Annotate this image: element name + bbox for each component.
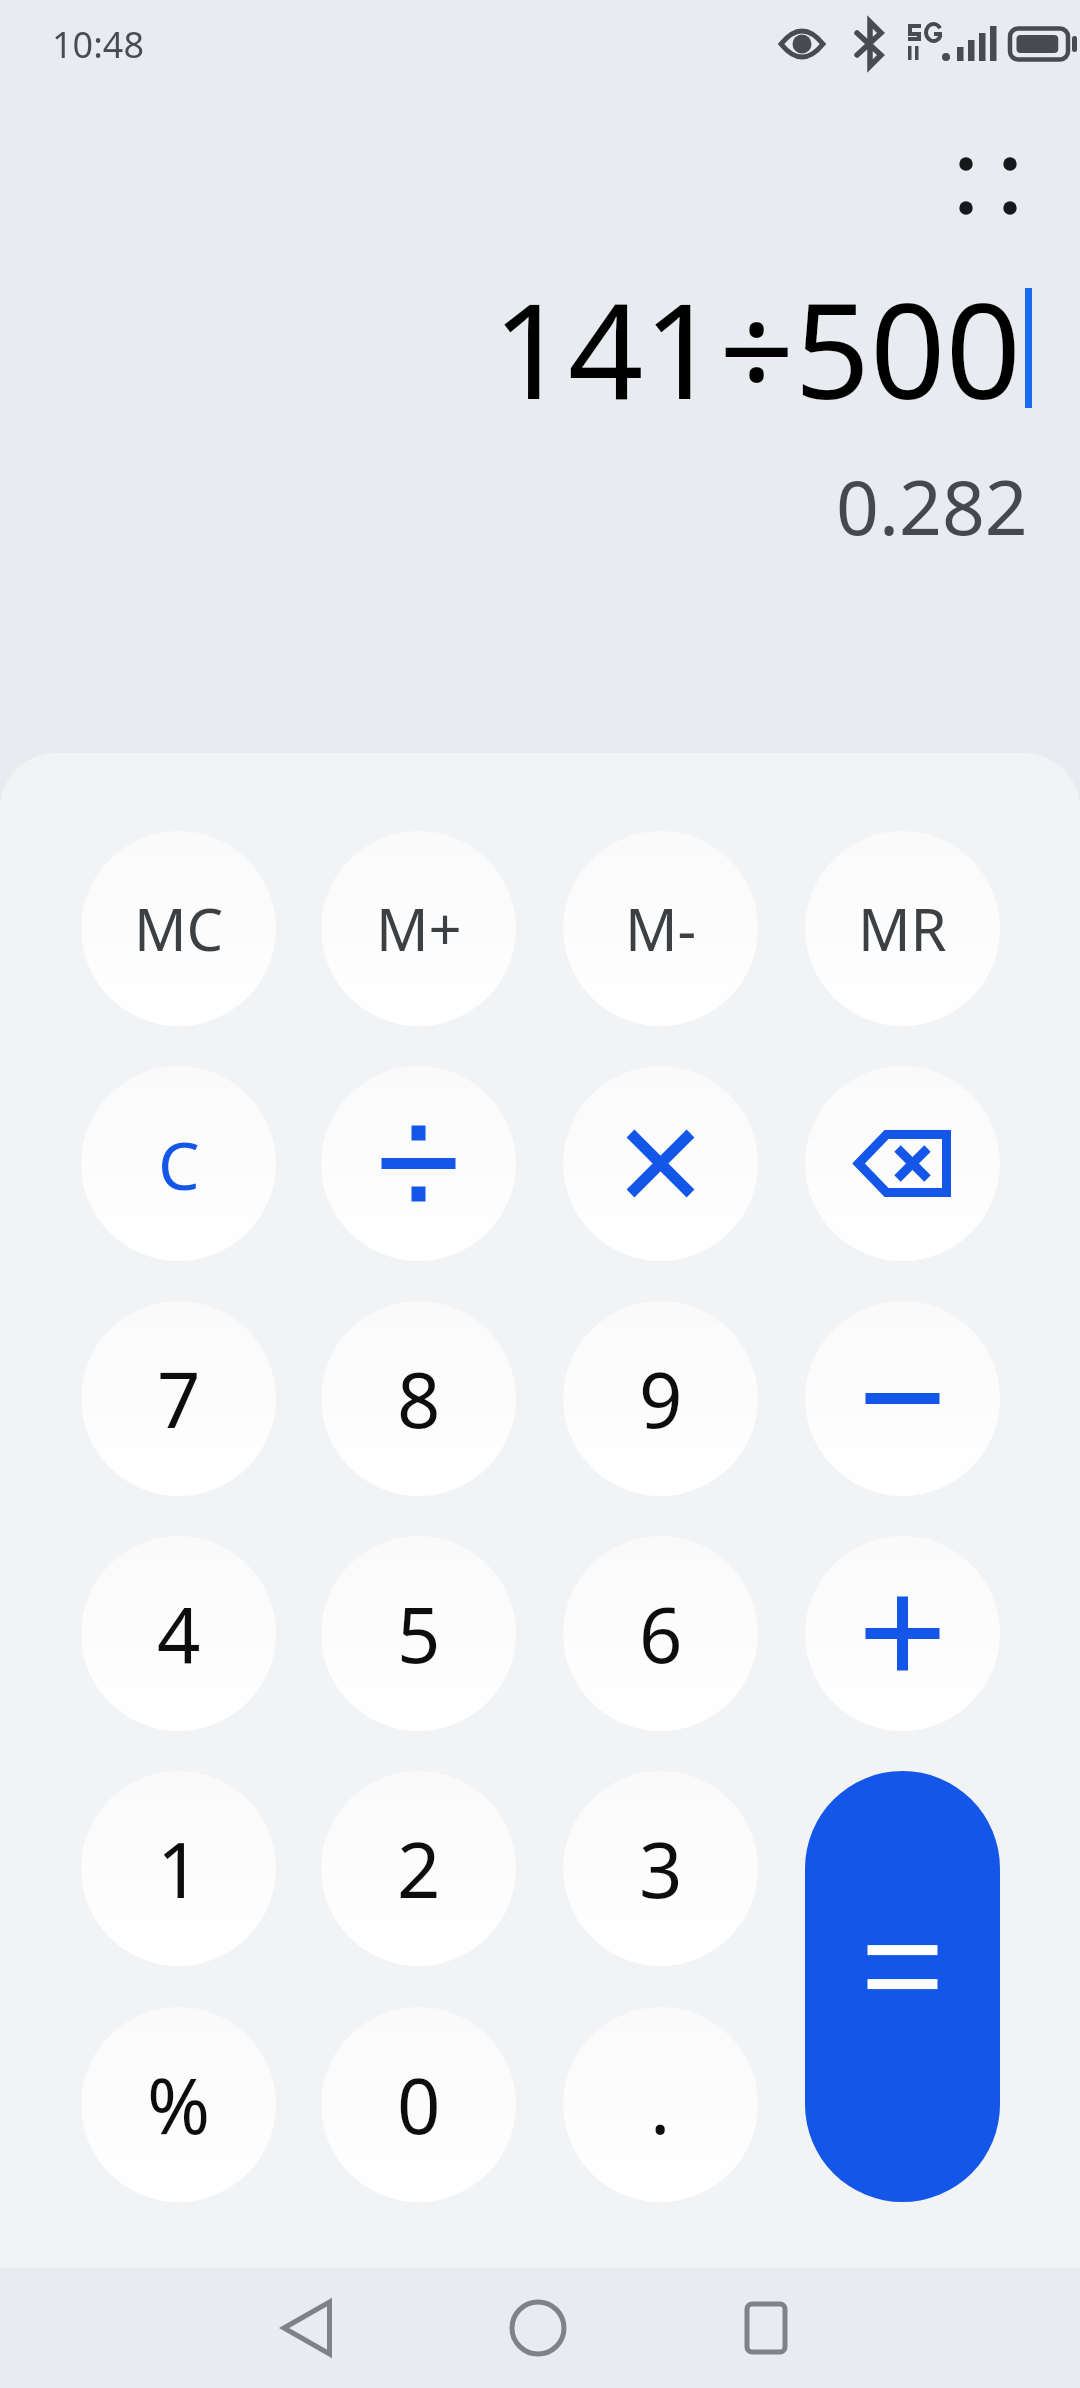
button[interactable]: M-: [563, 831, 758, 1026]
staticText: 9: [639, 1347, 683, 1451]
button[interactable]: Recent apps: [706, 2268, 826, 2388]
button[interactable]: Back: [250, 2268, 370, 2388]
staticText: 3: [639, 1817, 683, 1921]
button[interactable]: Equals: [805, 1771, 1000, 2202]
staticText: M+: [376, 889, 462, 968]
button[interactable]: .: [563, 2007, 758, 2202]
staticText: 0.282: [836, 455, 1028, 557]
button[interactable]: 9: [563, 1301, 758, 1496]
button[interactable]: Minus: [805, 1301, 1000, 1496]
button[interactable]: 6: [563, 1536, 758, 1731]
button[interactable]: 4: [81, 1536, 276, 1731]
button[interactable]: C: [81, 1066, 276, 1261]
staticText: 4: [157, 1582, 201, 1686]
staticText: 8: [397, 1347, 441, 1451]
staticText: 5: [397, 1582, 441, 1686]
button[interactable]: Backspace: [805, 1066, 1000, 1261]
button[interactable]: MC: [81, 831, 276, 1026]
button[interactable]: Plus: [805, 1536, 1000, 1731]
staticText: 1: [157, 1817, 201, 1921]
staticText: 10:48: [52, 20, 145, 69]
button[interactable]: MR: [805, 831, 1000, 1026]
button[interactable]: %: [81, 2007, 276, 2202]
staticText: 2: [397, 1817, 441, 1921]
staticText: 0: [397, 2053, 441, 2157]
button[interactable]: 7: [81, 1301, 276, 1496]
button[interactable]: 3: [563, 1771, 758, 1966]
staticText: MR: [858, 889, 947, 968]
button[interactable]: 5: [321, 1536, 516, 1731]
button[interactable]: Multiply: [563, 1066, 758, 1261]
button[interactable]: M+: [321, 831, 516, 1026]
button[interactable]: 8: [321, 1301, 516, 1496]
staticText: 7: [157, 1347, 201, 1451]
staticText: C: [158, 1119, 200, 1209]
button[interactable]: 0: [321, 2007, 516, 2202]
button[interactable]: 2: [321, 1771, 516, 1966]
staticText: M-: [625, 889, 697, 968]
staticText: 141÷500: [492, 258, 1021, 438]
button[interactable]: More options: [942, 140, 1034, 232]
staticText: MC: [134, 889, 224, 968]
staticText: %: [147, 2053, 211, 2157]
button[interactable]: 1: [81, 1771, 276, 1966]
button[interactable]: Divide: [321, 1066, 516, 1261]
button[interactable]: Home: [478, 2268, 598, 2388]
staticText: 6: [639, 1582, 683, 1686]
staticText: .: [650, 2053, 671, 2157]
